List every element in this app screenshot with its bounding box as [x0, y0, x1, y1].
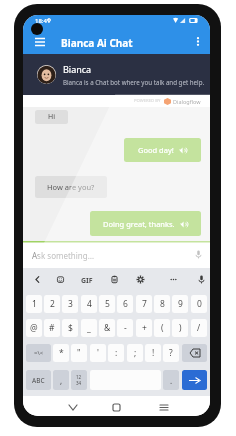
- staticText: 18:41: [35, 17, 51, 25]
- button[interactable]: (: [154, 319, 170, 337]
- staticText: Ask something…: [32, 250, 95, 261]
- button[interactable]: 7: [136, 295, 152, 313]
- staticText: 4: [87, 298, 92, 310]
- staticText: 8: [160, 298, 165, 310]
- staticText: #: [49, 322, 55, 334]
- button[interactable]: 12: [71, 370, 87, 390]
- staticText: 3: [68, 298, 73, 310]
- button[interactable]: 1: [26, 295, 42, 313]
- staticText: 7: [142, 298, 147, 310]
- button[interactable]: 9: [172, 295, 188, 313]
- button[interactable]: Home: [107, 398, 125, 416]
- button[interactable]: ;: [127, 344, 143, 362]
- button[interactable]: ABC: [26, 370, 51, 390]
- button[interactable]: Menu: [29, 29, 51, 54]
- staticText: 6: [123, 298, 128, 310]
- button[interactable]: 8: [154, 295, 170, 313]
- staticText: Dialogflow: [173, 98, 201, 105]
- button[interactable]: Settings: [134, 273, 146, 285]
- button[interactable]: &: [99, 319, 115, 337]
- staticText: -: [124, 322, 127, 334]
- button[interactable]: ': [90, 344, 106, 362]
- button[interactable]: Doing great, thanks.: [90, 211, 201, 236]
- staticText: =\<: [34, 349, 44, 357]
- button[interactable]: Voice input: [191, 247, 205, 261]
- staticText: +: [142, 322, 147, 334]
- staticText: *: [59, 347, 64, 359]
- staticText: (: [161, 322, 164, 334]
- staticText: :: [115, 347, 118, 359]
- staticText: @: [30, 322, 38, 334]
- staticText: ?: [169, 347, 173, 359]
- button[interactable]: Enter: [182, 370, 207, 390]
- button[interactable]: -: [117, 319, 133, 337]
- staticText: .: [170, 375, 173, 386]
- button[interactable]: _: [81, 319, 97, 337]
- button[interactable]: Backspace: [182, 344, 207, 362]
- button[interactable]: !: [145, 344, 161, 362]
- button[interactable]: @: [26, 319, 42, 337]
- staticText: ": [77, 347, 81, 359]
- staticText: How are you?: [47, 182, 95, 192]
- staticText: &: [104, 322, 111, 334]
- button[interactable]: 4: [81, 295, 97, 313]
- staticText: ABC: [32, 376, 45, 385]
- staticText: Bianca: [63, 63, 92, 75]
- button[interactable]: Good day!: [124, 138, 201, 162]
- staticText: 9: [178, 298, 183, 310]
- staticText: _: [87, 322, 91, 334]
- staticText: GIF: [81, 276, 93, 286]
- staticText: 1: [32, 298, 37, 310]
- staticText: /: [197, 322, 201, 334]
- button[interactable]: Back: [31, 273, 43, 285]
- button[interactable]: ): [172, 319, 188, 337]
- button[interactable]: #: [44, 319, 60, 337]
- button[interactable]: $: [62, 319, 78, 337]
- staticText: Good day!: [138, 145, 174, 155]
- button[interactable]: .: [163, 370, 179, 390]
- button[interactable]: =\<: [26, 344, 51, 362]
- button[interactable]: 5: [99, 295, 115, 313]
- button[interactable]: *: [53, 344, 69, 362]
- staticText: POWERED BY: [134, 98, 161, 104]
- staticText: Bianca is a Chat bot where you talk and …: [63, 78, 205, 86]
- button[interactable]: How are you?: [35, 176, 107, 198]
- button[interactable]: ": [71, 344, 87, 362]
- button[interactable]: Recents: [155, 398, 173, 416]
- button[interactable]: Hi: [35, 110, 68, 124]
- staticText: 12: [76, 374, 82, 380]
- button[interactable]: :: [108, 344, 124, 362]
- button[interactable]: Emoji: [54, 273, 66, 285]
- staticText: 5: [105, 298, 110, 310]
- button[interactable]: 3: [62, 295, 78, 313]
- staticText: Bianca Ai Chat: [61, 36, 133, 50]
- button[interactable]: 0: [191, 295, 207, 313]
- button[interactable]: 2: [44, 295, 60, 313]
- button[interactable]: Voice: [195, 273, 207, 285]
- button[interactable]: /: [191, 319, 207, 337]
- staticText: ): [179, 322, 182, 334]
- staticText: ;: [134, 347, 137, 359]
- staticText: Hi: [48, 112, 55, 122]
- button[interactable]: More: [167, 273, 179, 285]
- staticText: Doing great, thanks.: [103, 219, 175, 229]
- staticText: ,: [60, 375, 63, 386]
- button[interactable]: ,: [53, 370, 69, 390]
- staticText: ': [97, 347, 99, 359]
- button[interactable]: +: [136, 319, 152, 337]
- button[interactable]: ?: [163, 344, 179, 362]
- button[interactable]: Clipboard: [108, 273, 120, 285]
- staticText: !: [152, 347, 155, 359]
- staticText: 34: [76, 380, 82, 386]
- staticText: 2: [50, 298, 55, 310]
- button[interactable]: 6: [117, 295, 133, 313]
- staticText: 0: [197, 298, 202, 310]
- button[interactable]: More options: [191, 29, 205, 54]
- button[interactable]: Back: [64, 398, 82, 416]
- staticText: $: [68, 322, 73, 334]
